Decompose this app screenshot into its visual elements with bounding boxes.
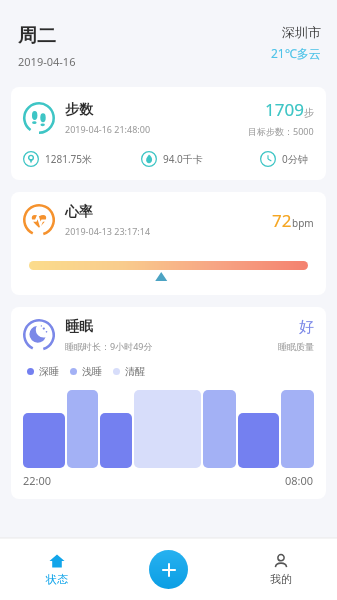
button[interactable]: 心率 — [11, 192, 326, 295]
staticText: 睡眠质量 — [278, 341, 314, 352]
staticText: 清醒 — [125, 365, 145, 378]
staticText: 睡眠时长：9小时49分 — [65, 340, 153, 352]
staticText: bpm — [292, 216, 314, 230]
button[interactable]: Add — [149, 550, 188, 589]
staticText: 1281.75米 — [45, 152, 92, 166]
button[interactable]: 睡眠 — [11, 307, 326, 499]
staticText: 深睡 — [39, 365, 59, 378]
staticText: 1709 — [265, 98, 304, 121]
staticText: 0分钟 — [282, 152, 308, 166]
staticText: 22:00 — [23, 473, 52, 488]
staticText: 好 — [299, 318, 314, 337]
staticText: 状态 — [46, 572, 68, 586]
staticText: 浅睡 — [82, 365, 102, 378]
staticText: 心率 — [65, 203, 93, 221]
staticText: 2019-04-16 — [18, 54, 76, 69]
staticText: 睡眠 — [65, 318, 93, 336]
staticText: 深圳市 — [282, 24, 321, 40]
staticText: 94.0千卡 — [163, 152, 203, 166]
staticText: 周二 — [18, 24, 56, 48]
staticText: 21℃多云 — [271, 45, 321, 61]
staticText: 我的 — [270, 572, 292, 586]
staticText: 步 — [304, 106, 314, 119]
staticText: 2019-04-16 21:48:00 — [65, 123, 151, 135]
staticText: 2019-04-13 23:17:14 — [65, 225, 151, 237]
staticText: 72 — [272, 209, 292, 232]
staticText: 目标步数：5000 — [248, 125, 314, 137]
staticText: 08:00 — [285, 473, 314, 488]
staticText: 步数 — [65, 101, 93, 119]
button[interactable]: 我的 — [225, 538, 337, 600]
button[interactable]: 状态 — [0, 538, 113, 600]
button[interactable]: 步数 — [11, 87, 326, 180]
